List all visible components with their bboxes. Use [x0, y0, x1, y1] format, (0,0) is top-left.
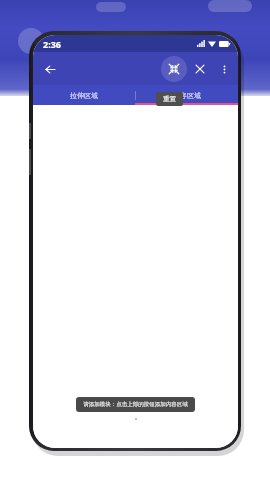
- button[interactable]: Collapse: [161, 56, 187, 82]
- button[interactable]: 内容区域: [135, 85, 238, 105]
- button[interactable]: Close: [187, 56, 213, 82]
- button[interactable]: 拉伸区域: [33, 85, 135, 105]
- staticText: 请添加模块：点击上部的按钮添加内容区域: [83, 401, 188, 408]
- button[interactable]: More options: [213, 58, 235, 80]
- staticText: 2:36: [43, 38, 61, 50]
- staticText: 内容区域: [173, 91, 201, 100]
- staticText: 重置: [163, 95, 176, 103]
- button[interactable]: Back: [37, 56, 63, 82]
- staticText: 拉伸区域: [70, 91, 98, 100]
